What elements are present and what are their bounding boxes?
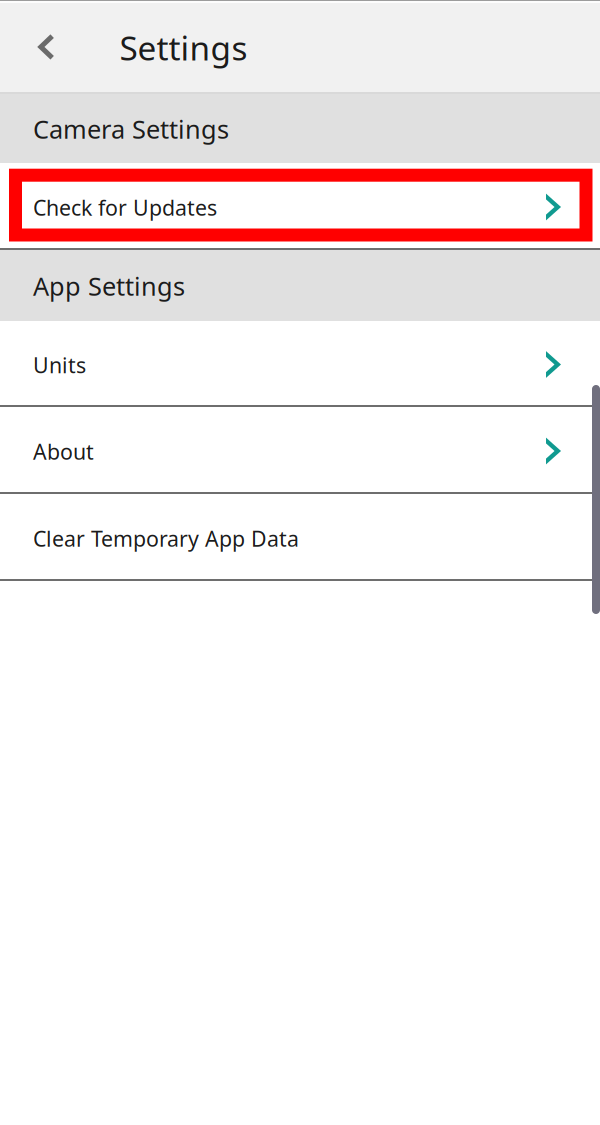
button[interactable]: Check for Updates bbox=[0, 163, 600, 248]
staticText: Settings bbox=[119, 25, 247, 70]
button[interactable]: Units bbox=[0, 321, 600, 405]
staticText: About bbox=[33, 437, 94, 466]
staticText: Camera Settings bbox=[33, 112, 229, 146]
staticText: Units bbox=[33, 351, 86, 379]
staticText: Check for Updates bbox=[33, 193, 217, 222]
staticText: Clear Temporary App Data bbox=[33, 524, 299, 553]
button[interactable]: Back bbox=[7, 3, 82, 92]
staticText: App Settings bbox=[33, 269, 185, 303]
button[interactable]: Clear Temporary App Data bbox=[0, 494, 600, 579]
button[interactable]: About bbox=[0, 407, 600, 492]
